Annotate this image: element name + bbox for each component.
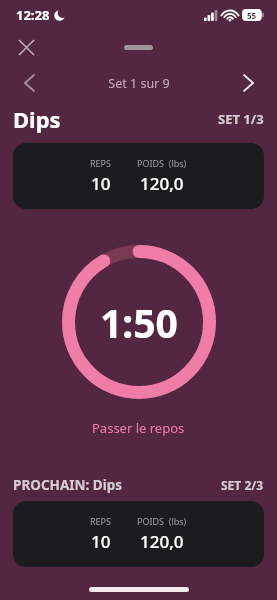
staticText: POIDS (lbs) — [137, 515, 187, 527]
staticText: Dips — [13, 104, 61, 134]
staticText: SET 1/3 — [218, 110, 264, 128]
staticText: POIDS (lbs) — [137, 157, 187, 169]
button[interactable]: Next set — [231, 66, 265, 100]
button[interactable]: Passer le repos — [76, 413, 201, 443]
staticText: REPS — [90, 515, 111, 527]
button[interactable]: REPS — [13, 501, 264, 567]
staticText: 10 — [91, 172, 111, 195]
staticText: Passer le repos — [92, 419, 185, 437]
staticText: 120,0 — [140, 172, 184, 195]
staticText: 12:28 — [16, 6, 50, 24]
staticText: 10 — [91, 530, 111, 553]
staticText: REPS — [90, 157, 111, 169]
button[interactable]: Close — [6, 30, 46, 64]
staticText: 55 — [247, 10, 257, 21]
staticText: PROCHAIN: Dips — [13, 476, 123, 494]
staticText: SET 2/3 — [221, 477, 264, 493]
button[interactable]: REPS — [13, 143, 264, 209]
button[interactable]: Previous set — [12, 66, 46, 100]
staticText: 1:50 — [100, 296, 178, 349]
staticText: Set 1 sur 9 — [108, 75, 170, 92]
staticText: 120,0 — [140, 530, 184, 553]
